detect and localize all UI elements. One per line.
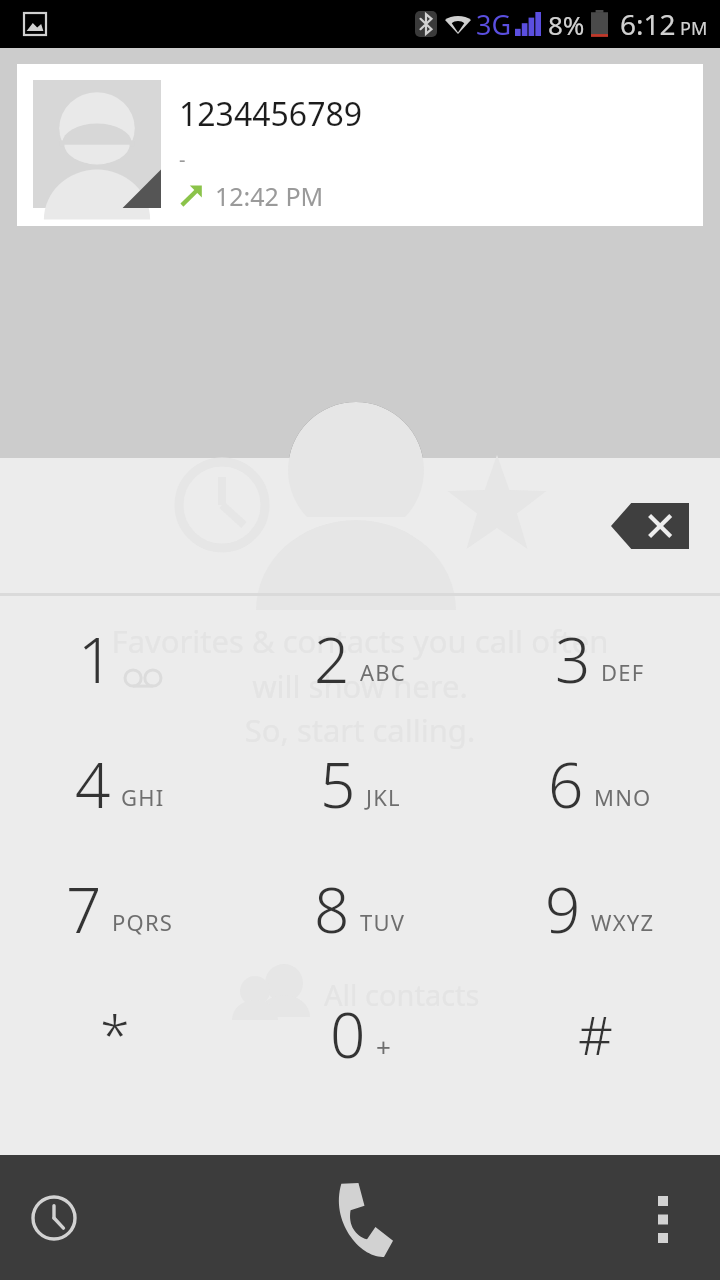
- staticText: GHI: [121, 782, 165, 812]
- staticText: 6:12: [620, 5, 676, 43]
- staticText: 3G: [476, 6, 512, 43]
- staticText: 4: [75, 742, 111, 826]
- staticText: *: [100, 997, 130, 1071]
- staticText: 2: [314, 617, 350, 701]
- staticText: PQRS: [112, 907, 174, 937]
- staticText: 12:42 PM: [215, 179, 324, 213]
- button[interactable]: More options: [628, 1183, 698, 1253]
- button[interactable]: 7: [0, 846, 240, 971]
- staticText: -: [179, 146, 186, 173]
- staticText: 6: [548, 742, 584, 826]
- button[interactable]: 0: [240, 971, 480, 1096]
- button[interactable]: 2: [240, 596, 480, 721]
- staticText: ABC: [360, 657, 406, 687]
- staticText: Favorites & contacts you call often will…: [90, 620, 630, 751]
- button[interactable]: 9: [480, 846, 720, 971]
- staticText: All contacts: [324, 975, 480, 1014]
- staticText: 0: [330, 992, 366, 1076]
- staticText: 8: [314, 867, 350, 951]
- staticText: DEF: [601, 657, 645, 687]
- staticText: 5: [320, 742, 356, 826]
- button[interactable]: *: [0, 971, 240, 1096]
- button[interactable]: 8: [240, 846, 480, 971]
- button[interactable]: 6: [480, 721, 720, 846]
- staticText: +: [376, 1029, 391, 1064]
- staticText: WXYZ: [591, 907, 655, 937]
- button[interactable]: 5: [240, 721, 480, 846]
- button[interactable]: Recents: [18, 1182, 90, 1254]
- staticText: 8%: [548, 7, 585, 42]
- staticText: 9: [545, 867, 581, 951]
- staticText: TUV: [360, 907, 406, 937]
- button[interactable]: 4: [0, 721, 240, 846]
- staticText: 3: [555, 617, 591, 701]
- staticText: MNO: [594, 782, 652, 812]
- button[interactable]: 3: [480, 596, 720, 721]
- staticText: JKL: [366, 782, 401, 812]
- button[interactable]: 1: [0, 596, 240, 721]
- staticText: PM: [680, 16, 708, 41]
- button[interactable]: #: [480, 971, 720, 1096]
- staticText: 7: [66, 867, 102, 951]
- staticText: #: [578, 997, 613, 1071]
- staticText: 1: [78, 617, 114, 701]
- button[interactable]: Backspace: [602, 493, 698, 559]
- staticText: 1234456789: [179, 92, 363, 136]
- button[interactable]: 1234456789: [17, 64, 703, 226]
- button[interactable]: Dialpad: [305, 1163, 415, 1273]
